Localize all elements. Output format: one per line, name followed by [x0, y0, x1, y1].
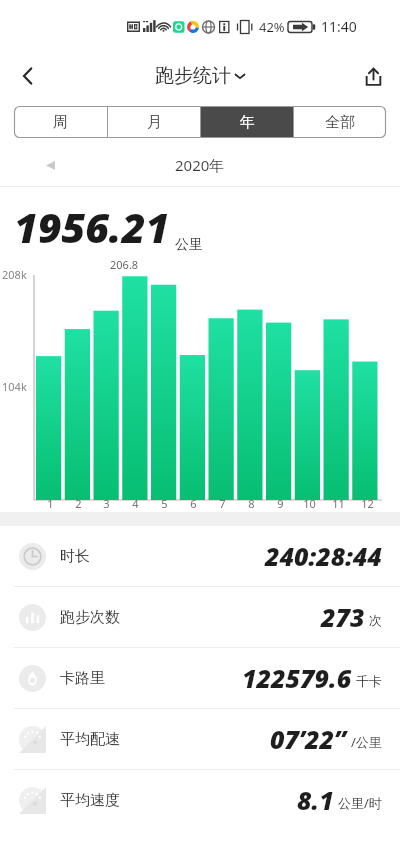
staticText: 时长	[60, 547, 90, 566]
button[interactable]: Back	[8, 56, 48, 96]
staticText: 次	[369, 612, 382, 628]
staticText: 10	[303, 496, 316, 511]
staticText: 5	[161, 496, 168, 511]
button[interactable]: 卡路里	[0, 648, 400, 708]
staticText: 月	[147, 113, 162, 132]
staticText: 年	[240, 113, 255, 132]
staticText: 8.1	[297, 783, 334, 817]
button[interactable]: 平均配速	[0, 709, 400, 769]
button[interactable]: Previous year	[38, 153, 62, 177]
staticText: 2	[75, 496, 82, 511]
staticText: 公里/时	[338, 794, 382, 812]
staticText: 周	[53, 113, 68, 132]
staticText: 07’22”	[270, 722, 347, 756]
staticText: 6	[190, 496, 197, 511]
staticText: 全部	[325, 113, 355, 132]
button[interactable]: 平均速度	[0, 770, 400, 830]
button[interactable]: 年	[201, 106, 293, 138]
button[interactable]: 跑步统计	[155, 64, 246, 88]
button[interactable]: Share	[353, 56, 393, 96]
staticText: 273	[321, 600, 365, 634]
button[interactable]: 全部	[294, 106, 386, 138]
staticText: 跑步统计	[155, 64, 231, 88]
staticText: 3	[103, 496, 110, 511]
staticText: 12	[361, 496, 374, 511]
staticText: 1956.21	[14, 199, 170, 255]
staticText: 4	[132, 496, 139, 511]
staticText: 42%	[259, 18, 285, 36]
staticText: 11:40	[321, 17, 357, 36]
staticText: 千卡	[356, 673, 382, 689]
staticText: 122579.6	[242, 661, 352, 695]
button[interactable]: 时长	[0, 526, 400, 586]
staticText: 208k	[2, 267, 27, 282]
button[interactable]: 周	[14, 106, 107, 138]
staticText: 9	[277, 496, 284, 511]
button[interactable]: 月	[108, 106, 200, 138]
staticText: /公里	[351, 733, 382, 751]
staticText: 8	[248, 496, 255, 511]
staticText: 206.8	[110, 257, 139, 272]
staticText: 2020年	[175, 155, 225, 175]
staticText: 卡路里	[60, 669, 105, 688]
staticText: 跑步次数	[60, 608, 120, 627]
staticText: 240:28:44	[265, 539, 382, 573]
staticText: 平均配速	[60, 730, 120, 749]
staticText: 1	[47, 496, 54, 511]
button[interactable]: 跑步次数	[0, 587, 400, 647]
staticText: 11	[332, 496, 345, 511]
staticText: 平均速度	[60, 791, 120, 810]
staticText: 7	[219, 496, 226, 511]
staticText: 104k	[2, 379, 27, 394]
staticText: 公里	[175, 236, 203, 254]
